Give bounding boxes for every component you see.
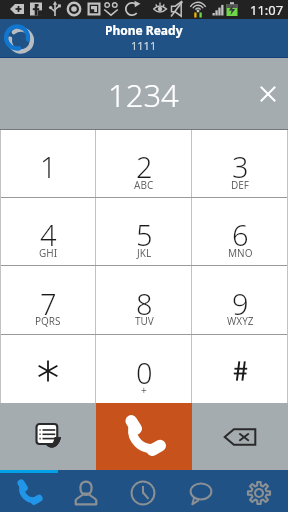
staticText: PQRS [35, 314, 61, 328]
staticText: 3 [232, 147, 249, 186]
button[interactable]: Contacts [57, 473, 114, 512]
button[interactable]: 5 [96, 198, 192, 265]
staticText: 5 [136, 215, 153, 254]
staticText: 2 [136, 147, 153, 186]
button[interactable]: Settings [230, 473, 288, 512]
staticText: 9 [232, 284, 249, 323]
staticText: 1111 [131, 38, 157, 53]
staticText: + [141, 383, 147, 397]
button[interactable]: Backspace [192, 403, 288, 470]
staticText: 7 [40, 284, 57, 323]
button[interactable]: App logo [5, 25, 33, 53]
button[interactable]: 0 [96, 335, 192, 403]
button[interactable]: 2 [96, 130, 192, 197]
button[interactable]: pound [192, 335, 288, 403]
button[interactable]: 3 [192, 130, 288, 197]
button[interactable]: 8 [96, 266, 192, 334]
staticText: Phone Ready [105, 22, 183, 38]
staticText: 6 [232, 215, 249, 254]
button[interactable]: Call [96, 403, 192, 470]
button[interactable]: Call history [114, 473, 172, 512]
button[interactable]: 1 [0, 130, 96, 197]
button[interactable]: star [0, 335, 96, 403]
staticText: DEF [231, 178, 250, 192]
staticText: 11:07 [250, 1, 284, 19]
button[interactable]: Clear number [248, 58, 288, 130]
staticText: GHI [39, 246, 58, 260]
button[interactable]: 4 [0, 198, 96, 265]
button[interactable]: Call log [0, 403, 96, 470]
button[interactable]: Dialer [0, 473, 57, 512]
staticText: 1 [40, 147, 57, 186]
button[interactable]: 7 [0, 266, 96, 334]
other: pound [228, 357, 252, 381]
button[interactable]: 9 [192, 266, 288, 334]
staticText: WXYZ [227, 314, 254, 328]
staticText: TUV [135, 314, 154, 328]
staticText: 1234 [108, 74, 179, 116]
other: star [35, 356, 61, 382]
button[interactable]: 6 [192, 198, 288, 265]
staticText: 0 [136, 353, 153, 392]
staticText: MNO [228, 246, 253, 260]
button[interactable]: Messages [172, 473, 230, 512]
staticText: JKL [137, 246, 152, 260]
staticText: 4 [40, 215, 57, 254]
staticText: ABC [134, 178, 154, 192]
staticText: 8 [136, 284, 153, 323]
